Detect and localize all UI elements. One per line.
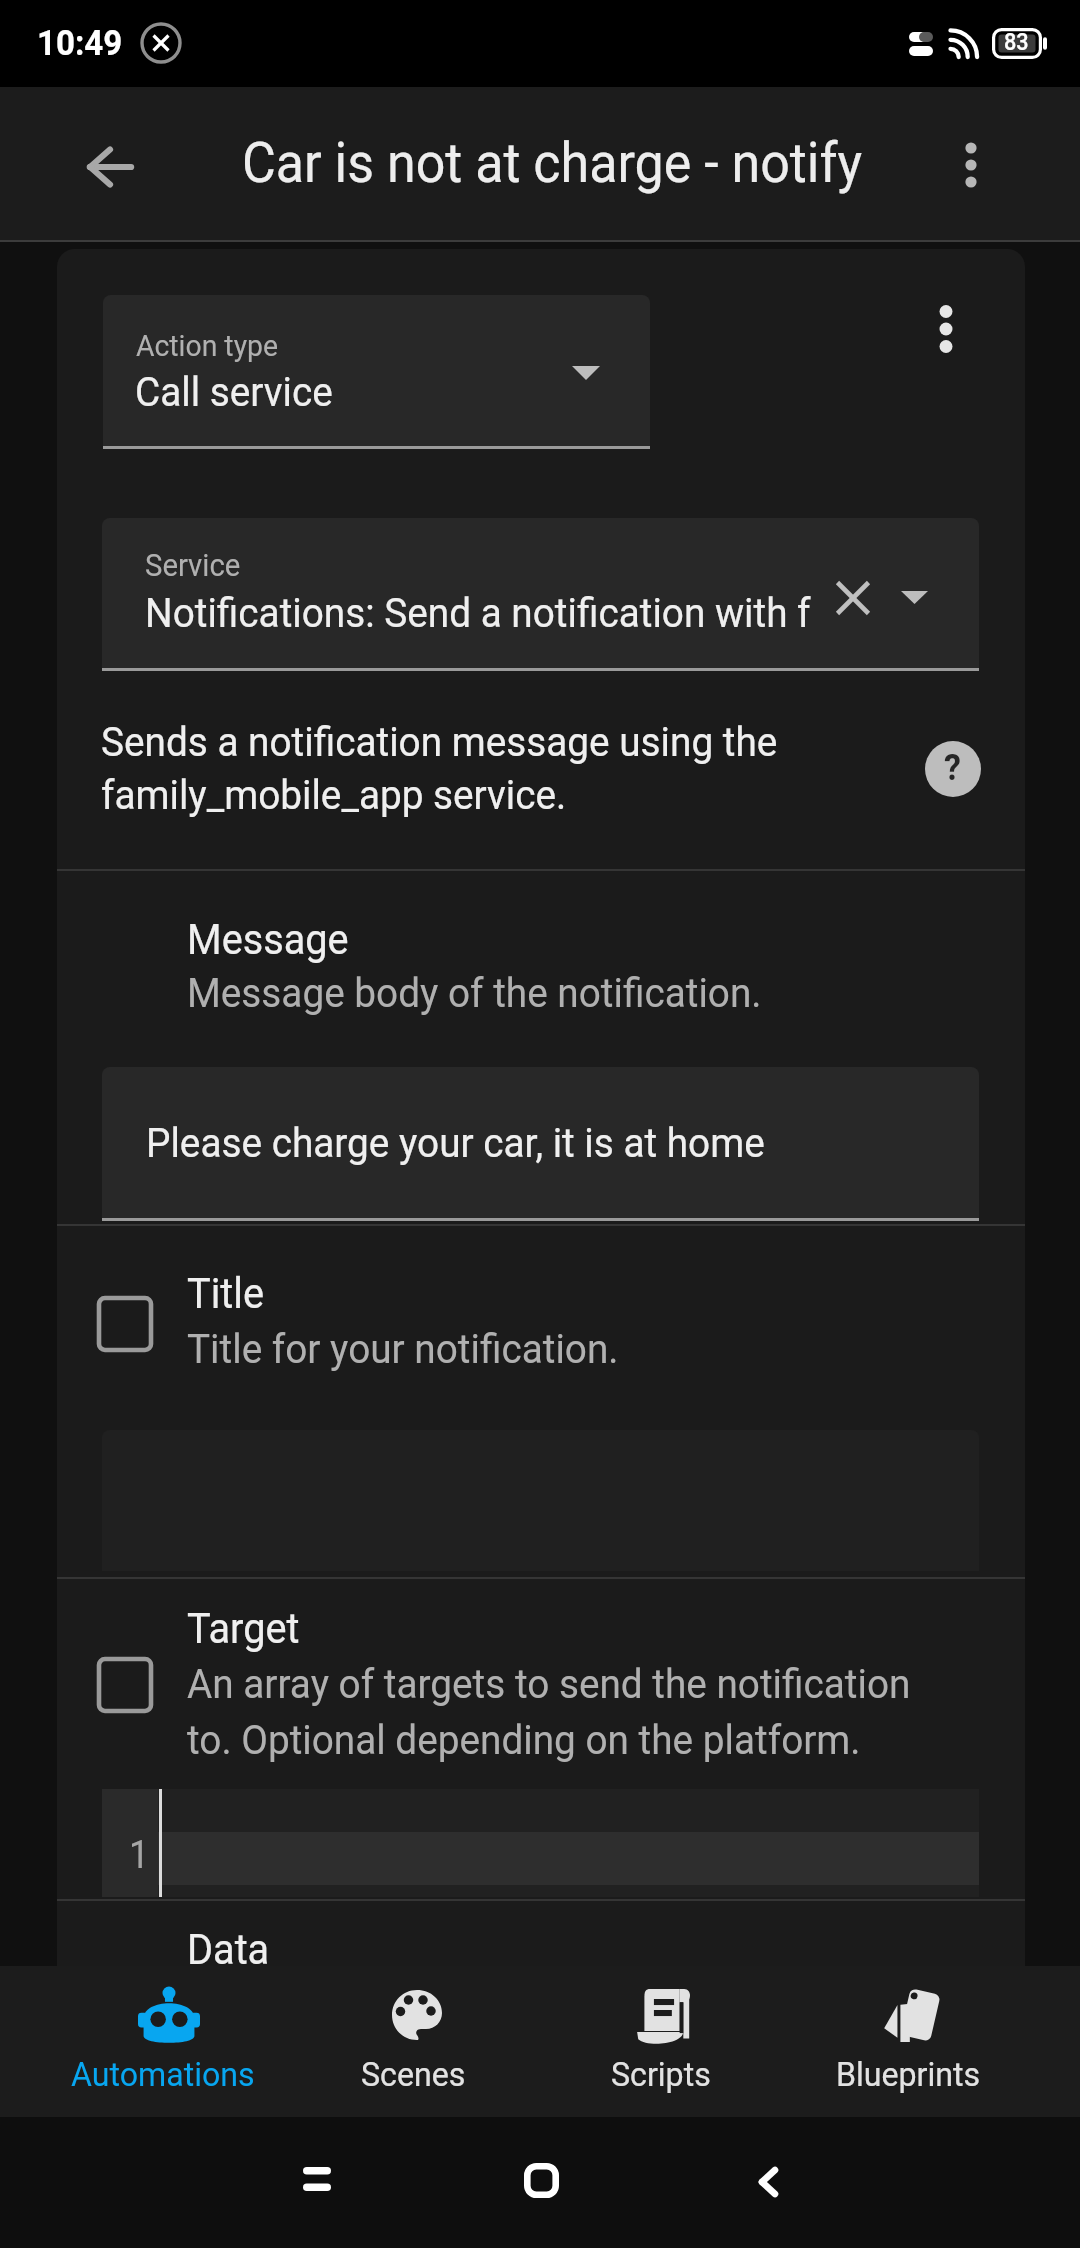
- button[interactable]: Help: [925, 741, 981, 797]
- staticText: Car is not at charge - notify: [242, 131, 863, 195]
- staticText: Automations: [71, 2054, 255, 2094]
- button[interactable]: Enable title field: [79, 1278, 171, 1370]
- button[interactable]: More options: [936, 130, 1006, 200]
- button[interactable]: Action menu: [912, 295, 980, 363]
- staticText: Action type: [136, 328, 279, 363]
- staticText: Target: [187, 1604, 300, 1653]
- staticText: ?: [944, 747, 961, 789]
- staticText: 1: [129, 1833, 150, 1878]
- button[interactable]: Navigate up: [75, 132, 145, 202]
- staticText: Title for your notification.: [187, 1325, 619, 1373]
- button[interactable]: Action type: [103, 295, 650, 446]
- staticText: 10:49: [37, 23, 123, 64]
- staticText: An array of targets to send the notifica…: [187, 1660, 962, 1764]
- button[interactable]: Back: [733, 2147, 803, 2217]
- staticText: Scripts: [611, 2054, 711, 2094]
- staticText: Data: [187, 1925, 269, 1974]
- staticText: Sends a notification message using the f…: [101, 718, 857, 819]
- button[interactable]: Blueprints: [788, 1966, 1036, 2117]
- staticText: Title: [187, 1269, 264, 1318]
- staticText: Please charge your car, it is at home: [146, 1119, 765, 1167]
- staticText: Call service: [135, 368, 333, 416]
- button[interactable]: Automations: [44, 1966, 292, 2117]
- button[interactable]: Scripts: [540, 1966, 788, 2117]
- staticText: Service: [145, 547, 240, 583]
- staticText: Blueprints: [836, 2054, 981, 2094]
- button[interactable]: Recent apps: [282, 2144, 352, 2214]
- staticText: 83: [1004, 29, 1029, 56]
- button[interactable]: Home: [506, 2145, 576, 2215]
- button[interactable]: Enable target field: [79, 1639, 171, 1731]
- staticText: Message: [187, 915, 349, 964]
- button[interactable]: Scenes: [292, 1966, 540, 2117]
- staticText: Notifications: Send a notification with …: [145, 589, 811, 637]
- staticText: Scenes: [361, 2054, 466, 2094]
- staticText: Message body of the notification.: [187, 969, 762, 1017]
- button[interactable]: Please charge your car, it is at home: [102, 1067, 979, 1218]
- button[interactable]: Clear service: [825, 570, 881, 626]
- button[interactable]: 1: [102, 1789, 979, 1897]
- button[interactable]: Service: [102, 518, 979, 668]
